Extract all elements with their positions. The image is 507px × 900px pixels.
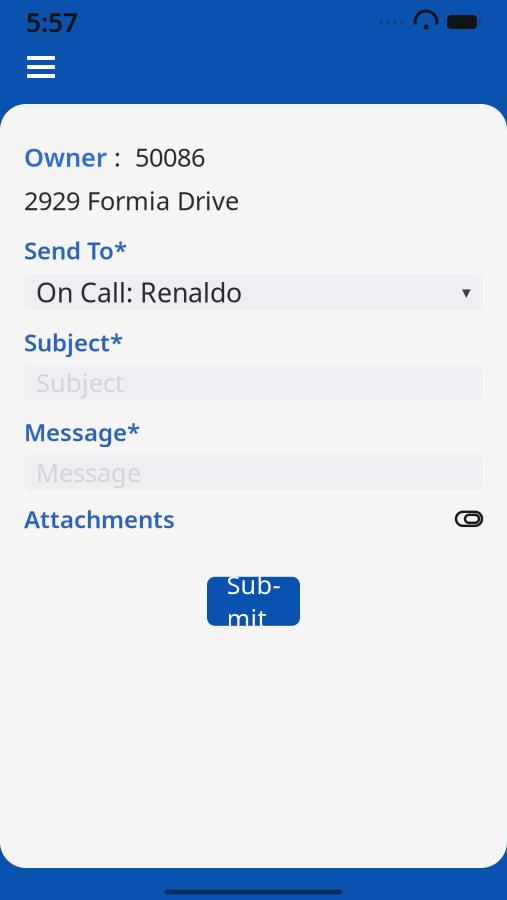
staticText: Owner <box>24 140 107 174</box>
staticText: 5:57 <box>26 4 78 40</box>
button[interactable]: Submit <box>207 577 300 626</box>
staticText: 2929 Formia Drive <box>24 184 239 217</box>
staticText: : 50086 <box>107 140 205 174</box>
button[interactable]: Message <box>24 455 483 490</box>
button[interactable]: Menu <box>17 48 65 86</box>
staticText: Message <box>36 456 141 489</box>
staticText: ▾ <box>462 282 471 302</box>
staticText: On Call: Renaldo <box>36 274 242 310</box>
staticText: Subject* <box>24 326 123 358</box>
staticText: Message* <box>24 416 140 448</box>
staticText: Attachments <box>24 503 175 535</box>
staticText: Submit <box>226 568 280 635</box>
staticText: Subject <box>36 366 124 399</box>
button[interactable]: Subject <box>24 365 483 400</box>
button[interactable]: Attachments <box>24 499 483 539</box>
staticText: Send To* <box>24 234 127 266</box>
button[interactable]: On Call: Renaldo <box>24 274 483 310</box>
